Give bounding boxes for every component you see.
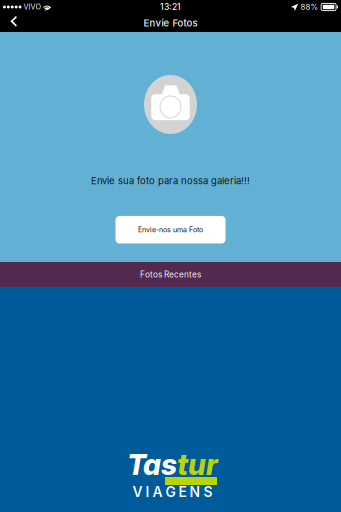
staticText: Envie sua foto para nossa galeria!!! (91, 175, 250, 186)
staticText: Envie Fotos (143, 17, 197, 29)
staticText: VIVO (23, 3, 41, 11)
button[interactable]: Fotos Recentes (0, 262, 341, 287)
staticText: tur (177, 447, 218, 482)
button[interactable]: Escolher foto (144, 75, 197, 134)
staticText: Tas (127, 447, 177, 482)
staticText: V I A G E N S (132, 484, 212, 500)
staticText: Envie-nos uma Foto (138, 225, 203, 234)
staticText: 13:21 (160, 2, 181, 12)
staticText: Fotos Recentes (140, 269, 201, 279)
button[interactable]: Envie-nos uma Foto (115, 216, 225, 243)
staticText: 88% (301, 2, 319, 12)
button[interactable]: Back (0, 14, 30, 32)
